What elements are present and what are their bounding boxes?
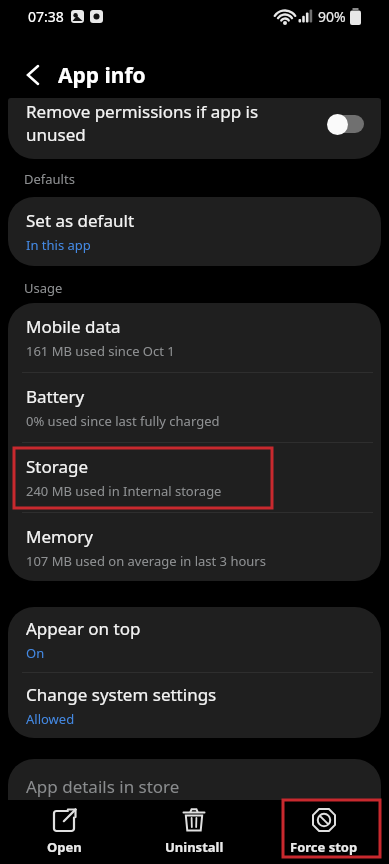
- staticText: Open: [47, 838, 82, 856]
- button[interactable]: Set as default: [8, 197, 381, 266]
- button[interactable]: Battery: [8, 373, 381, 442]
- staticText: Usage: [24, 279, 63, 297]
- staticText: Set as default: [26, 209, 135, 232]
- staticText: 90%: [318, 7, 346, 26]
- staticText: Memory: [26, 525, 93, 548]
- staticText: Defaults: [24, 170, 75, 188]
- staticText: Remove permissions if app is unused: [26, 100, 327, 146]
- staticText: Storage: [26, 455, 89, 478]
- staticText: Battery: [26, 385, 85, 408]
- button[interactable]: Appear on top: [8, 607, 381, 672]
- button[interactable]: Open: [0, 800, 129, 864]
- button[interactable]: Force stop: [259, 800, 389, 864]
- button[interactable]: [0, 47, 56, 103]
- staticText: Appear on top: [26, 617, 141, 640]
- staticText: App info: [58, 61, 146, 90]
- button[interactable]: Memory: [8, 513, 381, 581]
- staticText: Change system settings: [26, 683, 217, 706]
- staticText: App details in store: [26, 775, 180, 798]
- staticText: Force stop: [290, 838, 358, 856]
- staticText: Uninstall: [165, 838, 224, 856]
- staticText: 240 MB used in Internal storage: [26, 482, 222, 500]
- staticText: On: [26, 644, 45, 662]
- staticText: 161 MB used since Oct 1: [26, 342, 175, 360]
- button[interactable]: Mobile data: [8, 303, 381, 372]
- staticText: 107 MB used on average in last 3 hours: [26, 552, 266, 570]
- staticText: In this app: [26, 236, 91, 254]
- staticText: Allowed: [26, 710, 75, 728]
- button[interactable]: Change system settings: [8, 673, 381, 737]
- button[interactable]: App details in store: [8, 759, 381, 864]
- staticText: Mobile data: [26, 315, 121, 338]
- button[interactable]: Uninstall: [129, 800, 259, 864]
- staticText: 0% used since last fully charged: [26, 412, 220, 430]
- staticText: 07:38: [28, 7, 64, 26]
- button[interactable]: Remove permissions if app is unused: [8, 98, 381, 159]
- button[interactable]: Storage: [8, 443, 381, 512]
